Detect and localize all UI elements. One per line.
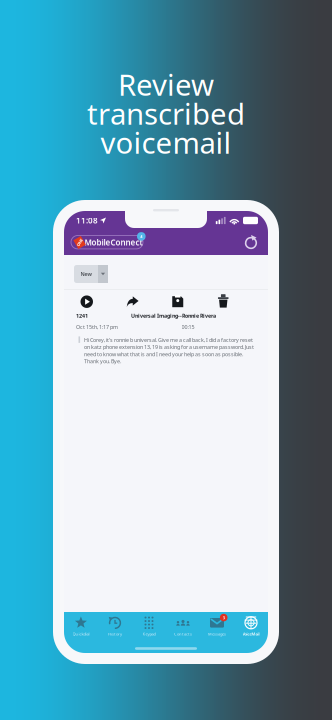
staticText: Messages: [208, 631, 226, 637]
staticText: Oct 15th, 1:17 pm: [76, 323, 118, 330]
staticText: 1241: [76, 312, 88, 319]
button[interactable]: History: [98, 612, 132, 640]
button[interactable]: Forward: [109, 295, 155, 308]
staticText: History: [108, 631, 122, 637]
staticText: New: [80, 270, 91, 278]
staticText: Universal Imaging--Ronnie Rivera: [131, 312, 216, 319]
button[interactable]: Quickdial: [64, 612, 98, 640]
staticText: Contacts: [174, 631, 192, 637]
staticText: Quickdial: [72, 631, 89, 637]
staticText: Keypad: [142, 631, 155, 637]
button[interactable]: 3: [200, 612, 234, 640]
staticText: 11:08: [76, 215, 98, 226]
button[interactable]: Save: [155, 295, 200, 308]
staticText: 00:15: [181, 323, 194, 330]
button[interactable]: VoiceMail: [234, 612, 268, 640]
staticText: voicemail: [100, 123, 231, 162]
button[interactable]: Delete: [200, 295, 246, 308]
staticText: transcribed: [87, 94, 245, 133]
button[interactable]: Contacts: [166, 612, 200, 640]
staticText: MobileConnect: [84, 237, 142, 248]
staticText: ONE: [76, 240, 84, 245]
staticText: VoiceMail: [242, 631, 259, 637]
staticText: 4: [140, 234, 142, 239]
button[interactable]: Keypad: [132, 612, 166, 640]
button[interactable]: New: [64, 265, 108, 283]
staticText: 3: [223, 615, 225, 620]
staticText: Review: [118, 65, 214, 104]
button[interactable]: Play: [64, 295, 109, 308]
button[interactable]: Refresh: [240, 232, 262, 252]
staticText: Hi Corey, it's ronnie b universal. Give …: [84, 336, 254, 365]
